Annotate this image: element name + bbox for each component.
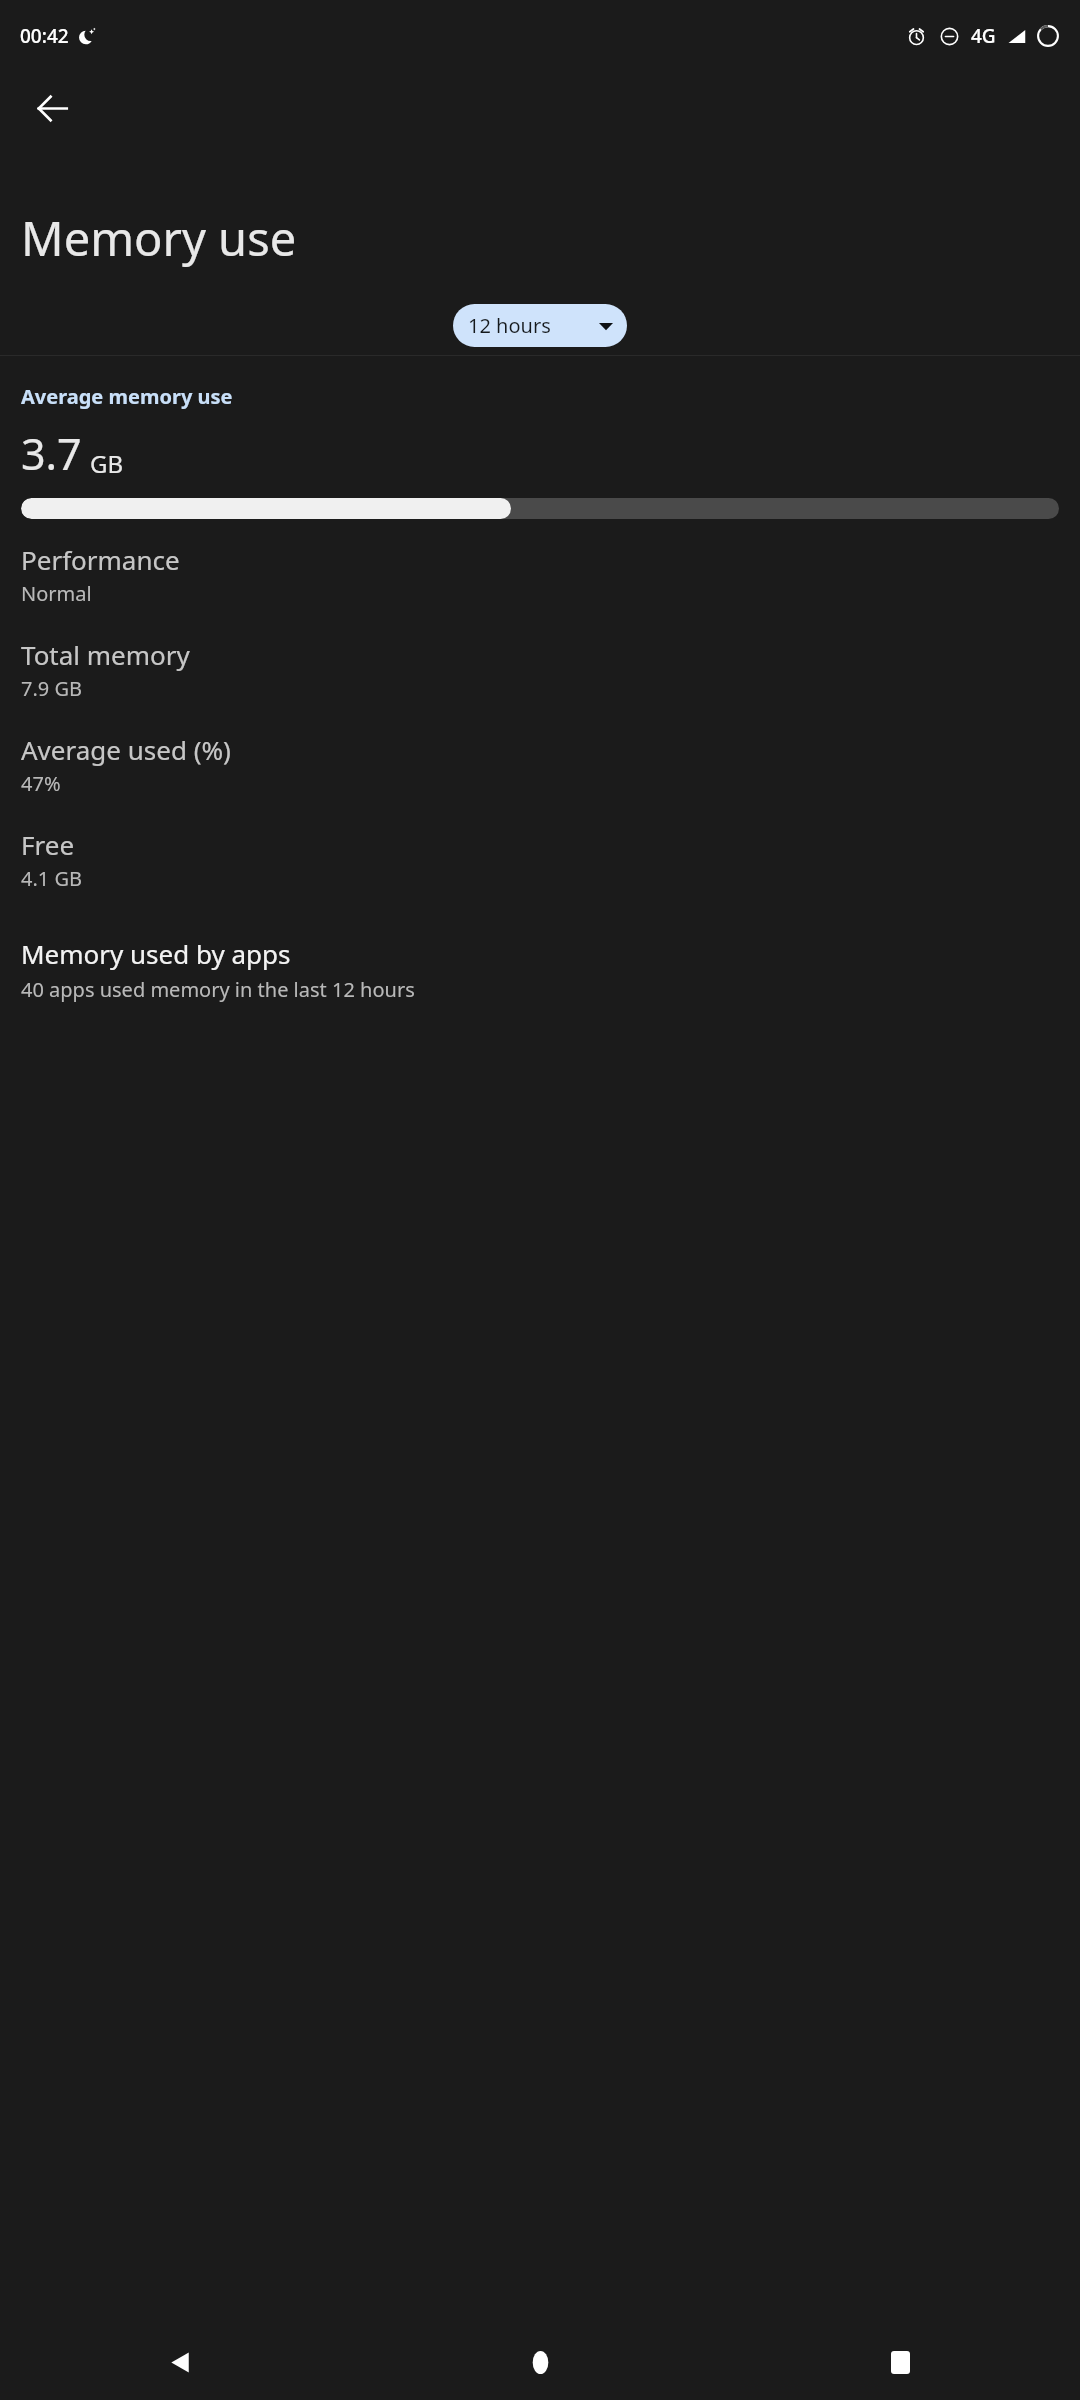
staticText: 4G — [971, 23, 996, 49]
staticText: 7.9 GB — [21, 675, 82, 702]
button[interactable]: Average used (%) — [0, 728, 1080, 801]
staticText: 3.7 — [21, 424, 82, 483]
staticText: 47% — [21, 770, 61, 797]
button[interactable]: Home — [360, 2325, 720, 2400]
staticText: Average used (%) — [21, 732, 231, 767]
button[interactable]: Back — [16, 72, 88, 144]
staticText: Average memory use — [21, 383, 233, 410]
button[interactable]: 12 hours — [453, 304, 627, 347]
button[interactable]: Total memory — [0, 633, 1080, 706]
staticText: 40 apps used memory in the last 12 hours — [21, 976, 415, 1003]
staticText: Memory used by apps — [21, 936, 291, 971]
staticText: 12 hours — [468, 312, 551, 339]
staticText: Performance — [21, 542, 180, 577]
staticText: Normal — [21, 580, 92, 607]
button[interactable]: Free — [0, 823, 1080, 896]
staticText: Free — [21, 827, 75, 862]
button[interactable]: Memory used by apps — [0, 932, 1080, 1007]
button[interactable]: Back — [0, 2325, 360, 2400]
staticText: 00:42 — [20, 23, 69, 49]
staticText: Total memory — [21, 637, 190, 672]
button[interactable]: Recent apps — [720, 2325, 1080, 2400]
staticText: GB — [90, 447, 124, 480]
staticText: 4.1 GB — [21, 865, 82, 892]
staticText: Memory use — [21, 206, 297, 270]
button[interactable]: Performance — [0, 538, 1080, 611]
